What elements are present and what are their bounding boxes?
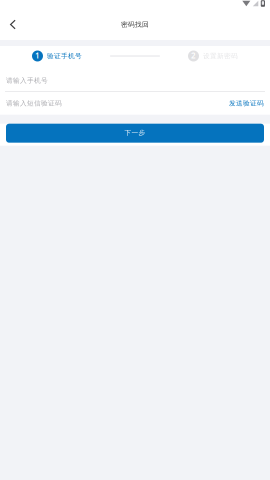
staticText: 请输入短信验证码 (6, 99, 62, 107)
staticText: 发送验证码 (229, 99, 264, 107)
staticText: 密码找回 (121, 20, 149, 29)
staticText: 2 (191, 50, 196, 61)
button[interactable]: 下一步 (6, 124, 264, 143)
staticText: 请输入手机号 (6, 76, 48, 85)
staticText: 设置新密码 (203, 52, 238, 60)
button[interactable]: 发送验证码 (229, 99, 264, 107)
button[interactable]: Back (1, 12, 25, 36)
staticText: 验证手机号 (47, 52, 82, 60)
staticText: 下一步 (124, 129, 145, 137)
staticText: 1 (35, 50, 40, 61)
